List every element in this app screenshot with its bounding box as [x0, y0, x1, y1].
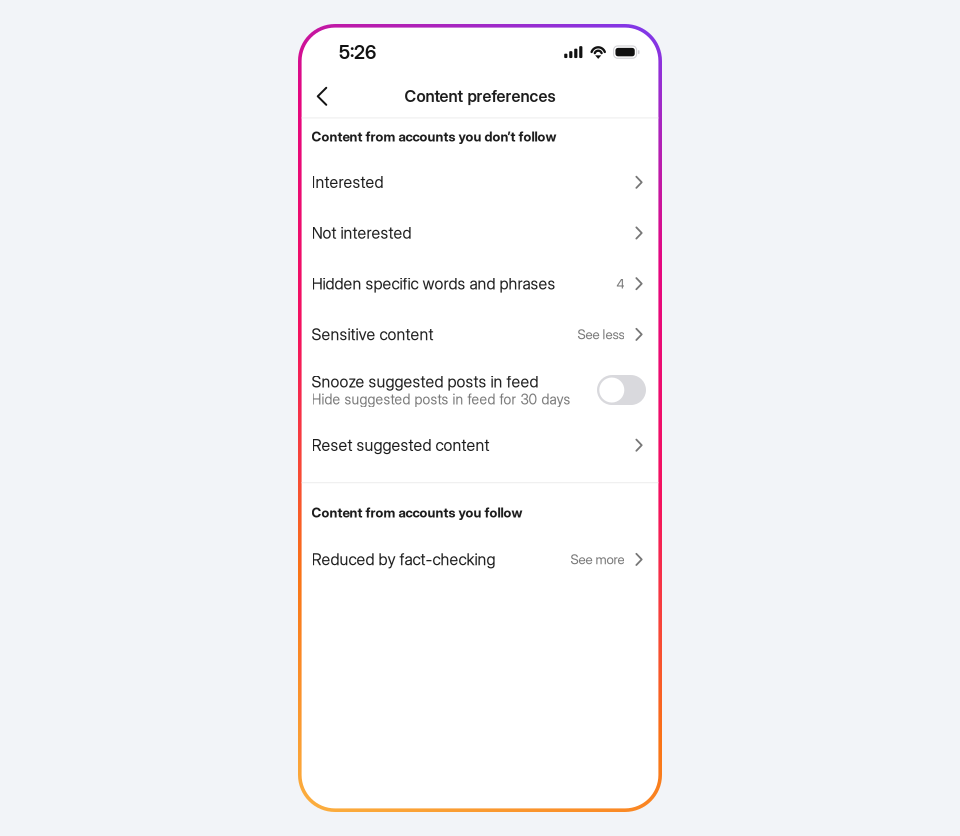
button[interactable]: Reduced by fact-checking — [298, 534, 662, 585]
button[interactable]: Snooze suggested posts in feed — [298, 360, 662, 408]
staticText: Content from accounts you don’t follow — [311, 128, 556, 145]
staticText: See more — [570, 551, 624, 567]
staticText: See less — [577, 326, 624, 342]
staticText: Reduced by fact-checking — [311, 550, 495, 569]
staticText: Not interested — [311, 223, 411, 243]
staticText: Content from accounts you follow — [311, 504, 522, 521]
staticText: 4 — [616, 276, 624, 292]
button[interactable]: Sensitive content — [298, 309, 662, 360]
staticText: Reset suggested content — [311, 435, 489, 455]
staticText: Snooze suggested posts in feed — [311, 372, 538, 391]
staticText: Interested — [311, 173, 383, 192]
staticText: Sensitive content — [311, 325, 433, 344]
button[interactable]: Reset suggested content — [298, 408, 662, 482]
staticText: Content preferences — [404, 87, 555, 106]
button[interactable]: Not interested — [298, 208, 662, 258]
button[interactable]: Interested — [298, 157, 662, 208]
button[interactable]: Back — [304, 77, 340, 115]
staticText: Hide suggested posts in feed for 30 days — [311, 391, 570, 408]
staticText: 5:26 — [339, 41, 376, 63]
button[interactable]: Hidden specific words and phrases — [298, 258, 662, 309]
staticText: Hidden specific words and phrases — [311, 274, 555, 293]
